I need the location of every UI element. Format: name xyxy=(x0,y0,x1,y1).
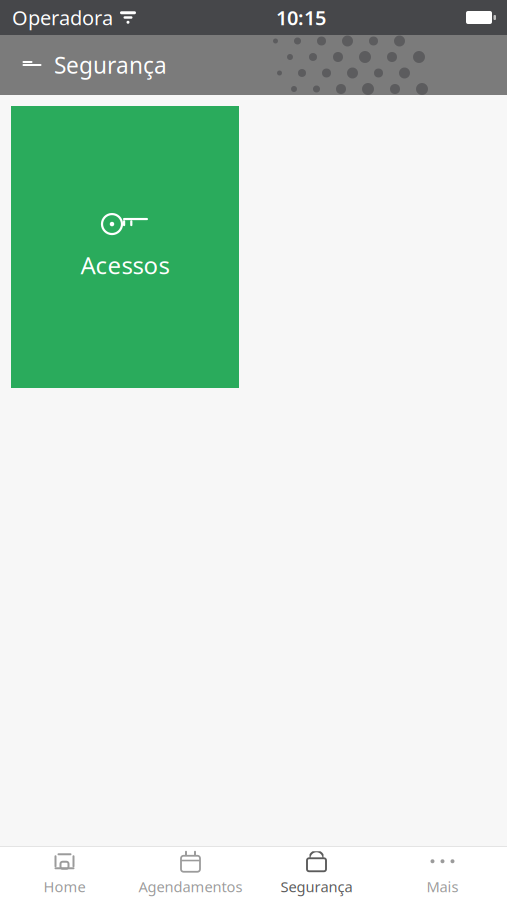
button[interactable]: Acessos xyxy=(11,106,239,388)
staticText: Segurança xyxy=(280,877,352,896)
staticText: Home xyxy=(43,877,85,896)
staticText: Segurança xyxy=(54,50,167,80)
staticText: Mais xyxy=(426,877,458,896)
button[interactable]: Mais xyxy=(379,847,505,900)
button[interactable]: Home xyxy=(1,847,127,900)
staticText: 10:15 xyxy=(276,4,326,31)
button[interactable]: Voltar xyxy=(10,35,54,95)
staticText: Acessos xyxy=(80,249,169,281)
staticText: Operadora xyxy=(12,4,113,31)
button[interactable]: Segurança xyxy=(253,847,379,900)
button[interactable]: Agendamentos xyxy=(127,847,253,900)
staticText: Agendamentos xyxy=(138,877,242,896)
